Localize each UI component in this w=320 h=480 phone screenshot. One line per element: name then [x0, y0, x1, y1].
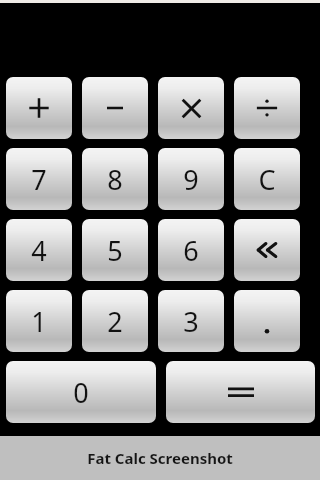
- button[interactable]: Equals: [166, 361, 315, 423]
- button[interactable]: Plus: [6, 77, 72, 139]
- staticText: 4: [31, 232, 47, 269]
- staticText: C: [258, 161, 276, 198]
- button[interactable]: Backspace: [234, 219, 300, 281]
- staticText: Fat Calc Screenshot: [87, 448, 233, 468]
- button[interactable]: 6: [158, 219, 224, 281]
- button[interactable]: 1: [6, 290, 72, 352]
- button[interactable]: Decimal point: [234, 290, 300, 352]
- staticText: 1: [31, 303, 47, 340]
- staticText: 3: [183, 303, 199, 340]
- button[interactable]: 5: [82, 219, 148, 281]
- staticText: 7: [31, 161, 47, 198]
- staticText: 0: [73, 374, 89, 411]
- button[interactable]: 0: [6, 361, 156, 423]
- button[interactable]: 7: [6, 148, 72, 210]
- staticText: 5: [107, 232, 123, 269]
- button[interactable]: C: [234, 148, 300, 210]
- button[interactable]: Divide: [234, 77, 300, 139]
- button[interactable]: Minus: [82, 77, 148, 139]
- staticText: 6: [183, 232, 199, 269]
- button[interactable]: 9: [158, 148, 224, 210]
- button[interactable]: Multiply: [158, 77, 224, 139]
- button[interactable]: 2: [82, 290, 148, 352]
- button[interactable]: 8: [82, 148, 148, 210]
- staticText: 9: [183, 161, 199, 198]
- button[interactable]: 4: [6, 219, 72, 281]
- staticText: 8: [107, 161, 123, 198]
- button[interactable]: 3: [158, 290, 224, 352]
- staticText: 2: [107, 303, 123, 340]
